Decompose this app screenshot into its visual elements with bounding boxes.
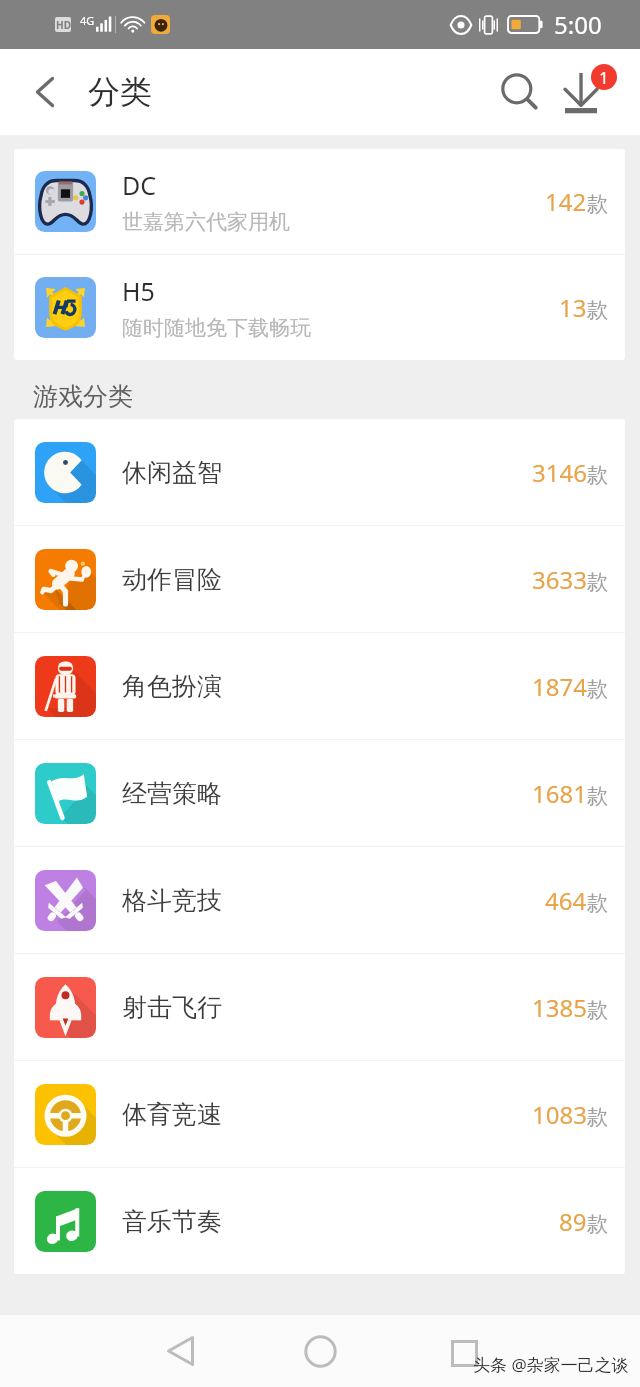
button[interactable]: Downloads [551,54,627,130]
staticText: 休闲益智 [122,457,532,488]
staticText: 款 [587,783,608,809]
staticText: 89 [559,1205,587,1238]
staticText: 款 [587,191,608,217]
button[interactable]: 格斗竞技 [14,847,625,953]
staticText: 5:00 [554,8,602,41]
button[interactable]: Home [292,1323,348,1379]
button[interactable]: 音乐节奏 [14,1168,625,1274]
button[interactable]: 体育竞速 [14,1061,625,1167]
staticText: 1385 [532,991,587,1024]
staticText: 款 [587,569,608,595]
staticText: 3146 [532,456,587,489]
staticText: 4G [80,13,95,28]
staticText: 射击飞行 [122,992,532,1023]
staticText: 464 [545,884,587,917]
staticText: 款 [587,297,608,323]
staticText: 头条 @杂家一己之谈 [473,1353,629,1376]
staticText: 13 [559,291,587,324]
button[interactable]: Back [152,1323,208,1379]
staticText: 款 [587,1211,608,1237]
staticText: 角色扮演 [122,671,532,702]
staticText: 经营策略 [122,778,532,809]
staticText: 世嘉第六代家用机 [122,209,290,235]
staticText: 款 [587,462,608,488]
staticText: 音乐节奏 [122,1206,559,1237]
staticText: 款 [587,676,608,702]
button[interactable]: Search [485,57,555,127]
button[interactable]: Back [20,67,70,117]
button[interactable]: 经营策略 [14,740,625,846]
staticText: 1083 [532,1098,587,1131]
staticText: H5 [122,274,155,308]
button[interactable]: H5 [14,255,625,360]
staticText: 游戏分类 [33,381,133,412]
button[interactable]: 射击飞行 [14,954,625,1060]
staticText: 体育竞速 [122,1099,532,1130]
staticText: 格斗竞技 [122,885,545,916]
staticText: 1681 [532,777,587,810]
button[interactable]: 休闲益智 [14,419,625,525]
staticText: 142 [545,185,587,218]
staticText: HD [56,18,71,32]
button[interactable]: 动作冒险 [14,526,625,632]
staticText: 1874 [532,670,587,703]
button[interactable]: Recents [437,1326,491,1380]
staticText: 款 [587,890,608,916]
staticText: 动作冒险 [122,564,532,595]
staticText: 3633 [532,563,587,596]
staticText: 1 [599,66,609,89]
staticText: 随时随地免下载畅玩 [122,315,311,341]
staticText: 分类 [88,72,152,112]
button[interactable]: DC [14,149,625,254]
staticText: 款 [587,1104,608,1130]
staticText: 款 [587,997,608,1023]
button[interactable]: 角色扮演 [14,633,625,739]
staticText: DC [122,168,157,202]
